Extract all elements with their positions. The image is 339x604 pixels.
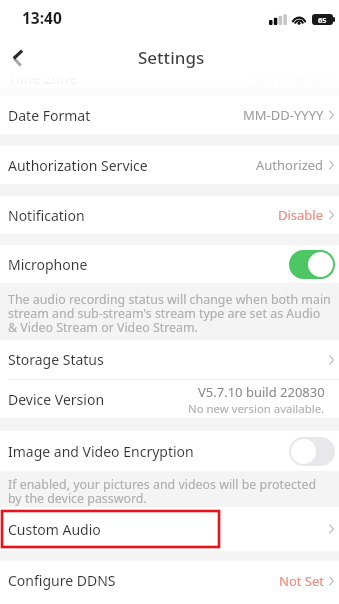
button[interactable]: Storage Status bbox=[0, 340, 339, 379]
staticText: Device Version bbox=[8, 390, 105, 409]
staticText: Configure DDNS bbox=[8, 571, 116, 590]
staticText: V5.7.10 build 220830 bbox=[198, 383, 325, 401]
staticText: MM-DD-YYYY bbox=[243, 106, 324, 124]
staticText: Authorization Service bbox=[8, 156, 148, 175]
staticText: Settings bbox=[138, 46, 205, 69]
button[interactable]: Microphone bbox=[0, 245, 339, 283]
staticText: Date Format bbox=[8, 106, 91, 125]
staticText: Not Set bbox=[279, 572, 324, 590]
button[interactable]: Configure DDNS bbox=[0, 561, 339, 600]
staticText: Disable bbox=[278, 206, 324, 224]
button[interactable]: Image and Video Encryption bbox=[0, 431, 339, 471]
staticText: No new version available. bbox=[188, 401, 325, 417]
staticText: The audio recording status will change w… bbox=[8, 291, 332, 336]
staticText: Authorized bbox=[256, 156, 324, 174]
staticText: Image and Video Encryption bbox=[8, 442, 194, 461]
staticText: If enabled, your pictures and videos wil… bbox=[8, 476, 332, 507]
button[interactable]: Time Zone bbox=[0, 65, 339, 91]
staticText: Time Zone bbox=[8, 69, 78, 88]
staticText: Storage Status bbox=[8, 350, 104, 369]
button[interactable]: Notification bbox=[0, 196, 339, 234]
button[interactable]: Back bbox=[3, 43, 31, 71]
button[interactable]: Device Version bbox=[0, 381, 339, 418]
button[interactable]: Date Format bbox=[0, 96, 339, 134]
button[interactable]: Authorization Service bbox=[0, 146, 339, 184]
staticText: 13:40 bbox=[22, 7, 62, 28]
staticText: Notification bbox=[8, 206, 85, 225]
staticText: 65 bbox=[318, 15, 327, 25]
staticText: Microphone bbox=[8, 255, 88, 274]
button[interactable]: Custom Audio bbox=[0, 507, 339, 551]
staticText: Custom Audio bbox=[8, 520, 101, 539]
